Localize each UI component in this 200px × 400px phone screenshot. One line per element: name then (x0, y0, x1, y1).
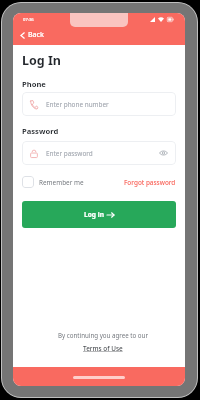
staticText: Password (22, 126, 59, 136)
staticText: Terms of Use (83, 344, 123, 353)
button[interactable]: Log in (22, 201, 176, 228)
button[interactable]: Enter phone number (22, 92, 176, 116)
staticText: Remember me (39, 178, 84, 187)
other: Show password (159, 150, 168, 156)
staticText: Enter password (46, 149, 93, 158)
button[interactable]: Back (18, 28, 46, 42)
button[interactable]: Enter password (22, 141, 176, 165)
staticText: Log In (22, 52, 61, 69)
staticText: Back (28, 30, 44, 40)
staticText: Log in (84, 210, 104, 219)
button[interactable]: Forgot password (122, 178, 176, 187)
staticText: 07:36 (23, 17, 34, 23)
button[interactable]: Terms of Use (83, 344, 123, 353)
staticText: Enter phone number (46, 100, 109, 109)
staticText: Phone (22, 79, 46, 89)
staticText: Forgot password (124, 178, 176, 187)
button[interactable]: Remember me (22, 176, 86, 188)
staticText: By continuing you agree to our (58, 331, 148, 339)
